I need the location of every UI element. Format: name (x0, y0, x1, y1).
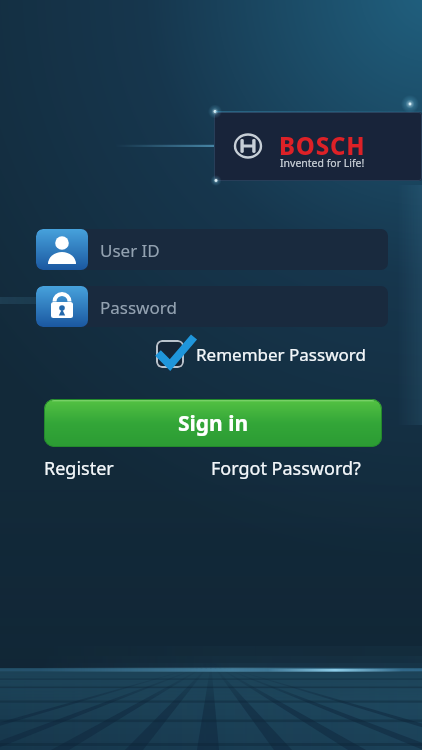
staticText: Register (44, 456, 114, 481)
button[interactable]: Sign in (44, 399, 382, 447)
staticText: Password (100, 296, 177, 319)
button[interactable]: Forgot Password? (211, 456, 361, 481)
button[interactable]: Remember Password (196, 343, 366, 366)
button[interactable] (156, 340, 184, 368)
staticText: Invented for Life! (280, 156, 365, 170)
button[interactable]: User ID (36, 229, 388, 270)
staticText: Forgot Password? (211, 456, 361, 481)
button[interactable]: Register (44, 456, 114, 481)
button[interactable]: Password (36, 286, 388, 327)
staticText: BOSCH (279, 129, 366, 162)
staticText: Sign in (178, 409, 249, 438)
staticText: User ID (100, 239, 160, 262)
staticText: Remember Password (196, 343, 366, 366)
